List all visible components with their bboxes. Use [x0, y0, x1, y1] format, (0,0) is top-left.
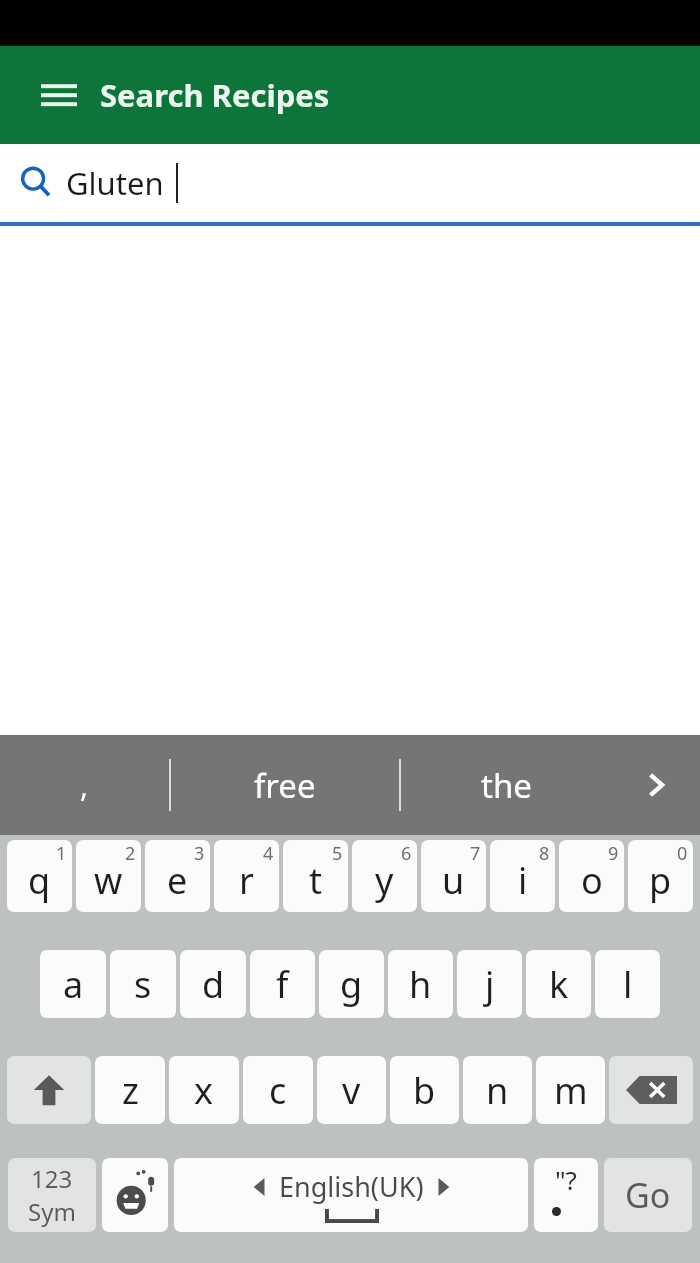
staticText: d [202, 960, 225, 1009]
staticText: 8 [539, 841, 550, 866]
staticText: x [194, 1066, 214, 1115]
button[interactable]: 4 [214, 840, 279, 912]
staticText: 5 [332, 841, 343, 866]
button[interactable]: Shift [7, 1056, 91, 1124]
button[interactable]: x [169, 1056, 239, 1124]
button[interactable]: Emoji and voice input [102, 1158, 168, 1232]
button[interactable]: 5 [283, 840, 348, 912]
staticText: s [134, 960, 152, 1009]
button[interactable]: z [95, 1056, 165, 1124]
staticText: "? [555, 1162, 577, 1197]
staticText: 6 [401, 841, 412, 866]
button[interactable]: Punctuation [534, 1158, 598, 1232]
staticText: g [340, 960, 363, 1009]
staticText: Sym [28, 1195, 76, 1228]
staticText: y [375, 856, 394, 905]
button[interactable]: b [390, 1056, 459, 1124]
staticText: Search Recipes [100, 74, 330, 116]
staticText: Gluten [66, 162, 164, 204]
staticText: f [276, 960, 289, 1009]
button[interactable]: m [536, 1056, 605, 1124]
button[interactable]: k [526, 950, 591, 1018]
button[interactable]: v [317, 1056, 386, 1124]
button[interactable]: free [171, 735, 399, 835]
button[interactable]: a [40, 950, 106, 1018]
button[interactable]: 3 [145, 840, 210, 912]
staticText: 2 [125, 841, 136, 866]
staticText: the [481, 763, 532, 808]
button[interactable]: 6 [352, 840, 417, 912]
button[interactable]: the [401, 735, 612, 835]
staticText: l [623, 960, 633, 1009]
staticText: k [549, 960, 569, 1009]
staticText: i [518, 856, 528, 905]
button[interactable]: d [180, 950, 246, 1018]
staticText: j [485, 960, 495, 1009]
staticText: m [554, 1066, 588, 1115]
staticText: 0 [677, 841, 688, 866]
staticText: r [239, 856, 254, 905]
staticText: u [442, 856, 465, 905]
button[interactable]: Space, English (UK) [174, 1158, 528, 1232]
staticText: o [581, 856, 603, 905]
staticText: , [80, 765, 89, 806]
button[interactable]: g [319, 950, 384, 1018]
staticText: 123 [31, 1162, 73, 1195]
button[interactable]: Backspace [609, 1056, 693, 1124]
button[interactable]: c [243, 1056, 313, 1124]
button[interactable]: l [595, 950, 660, 1018]
staticText: w [94, 856, 123, 905]
button[interactable]: 1 [7, 840, 72, 912]
button[interactable]: j [457, 950, 522, 1018]
staticText: e [167, 856, 188, 905]
staticText: h [409, 960, 432, 1009]
button[interactable]: , [0, 735, 169, 835]
staticText: c [269, 1066, 287, 1115]
staticText: v [342, 1066, 361, 1115]
staticText: b [413, 1066, 436, 1115]
button[interactable]: 123 [8, 1158, 96, 1232]
staticText: p [649, 856, 672, 905]
staticText: 9 [608, 841, 619, 866]
button[interactable]: s [110, 950, 176, 1018]
staticText: 4 [263, 841, 274, 866]
button[interactable]: 8 [490, 840, 555, 912]
button[interactable]: h [388, 950, 453, 1018]
button[interactable]: Open navigation menu [32, 68, 86, 122]
staticText: free [254, 763, 316, 808]
button[interactable]: 9 [559, 840, 624, 912]
button[interactable]: More suggestions [612, 735, 700, 835]
button[interactable]: Go [604, 1158, 692, 1232]
button[interactable]: 2 [76, 840, 141, 912]
staticText: 1 [56, 841, 67, 866]
button[interactable]: n [463, 1056, 532, 1124]
button[interactable]: 7 [421, 840, 486, 912]
staticText: q [28, 856, 51, 905]
staticText: n [486, 1066, 509, 1115]
staticText: 3 [194, 841, 205, 866]
staticText: a [63, 960, 84, 1009]
staticText: z [122, 1066, 139, 1115]
button[interactable]: 0 [628, 840, 693, 912]
staticText: English(UK) [279, 1168, 424, 1205]
button[interactable]: f [250, 950, 315, 1018]
staticText: Go [625, 1172, 671, 1218]
button[interactable]: Gluten [0, 144, 700, 222]
staticText: t [309, 856, 322, 905]
staticText: 7 [470, 841, 481, 866]
